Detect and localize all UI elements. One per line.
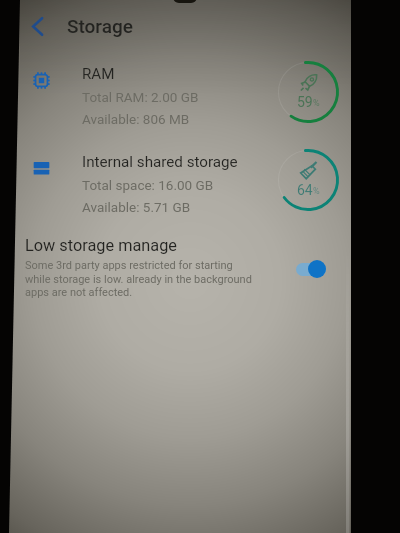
staticText: Available: 5.71 GB bbox=[82, 199, 191, 215]
staticText: Some 3rd party apps restricted for start… bbox=[25, 259, 252, 298]
staticText: % bbox=[313, 98, 320, 109]
button[interactable]: Back bbox=[16, 5, 58, 47]
staticText: % bbox=[313, 186, 320, 197]
staticText: Internal shared storage bbox=[82, 153, 238, 171]
staticText: 59 bbox=[297, 94, 313, 110]
button[interactable]: Low storage manage bbox=[16, 236, 341, 298]
button[interactable] bbox=[296, 259, 328, 279]
button[interactable]: RAM bbox=[16, 52, 341, 140]
staticText: Storage bbox=[67, 15, 133, 37]
staticText: 64 bbox=[297, 182, 313, 198]
staticText: Total RAM: 2.00 GB bbox=[82, 89, 199, 105]
staticText: Total space: 16.00 GB bbox=[82, 177, 214, 193]
staticText: Low storage manage bbox=[25, 236, 177, 255]
staticText: RAM bbox=[82, 65, 115, 83]
staticText: Available: 806 MB bbox=[82, 111, 190, 127]
button[interactable]: Internal shared storage bbox=[16, 140, 341, 228]
